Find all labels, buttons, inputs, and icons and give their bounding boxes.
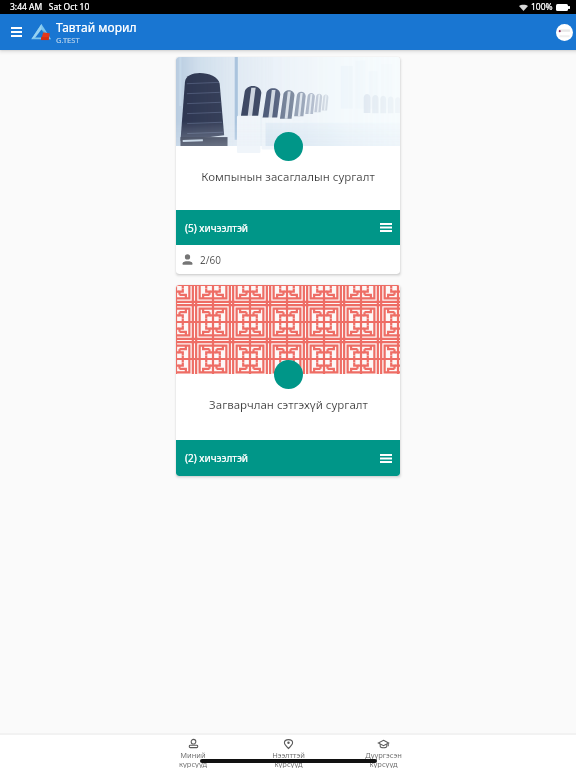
staticText: Нээлттэй курсууд	[272, 750, 305, 768]
staticText: (2) хичээлтэй	[185, 451, 249, 465]
button[interactable]: My courses	[145, 735, 241, 768]
staticText: G.TEST	[56, 35, 80, 45]
staticText: 3:44 AM Sat Oct 10	[10, 1, 90, 13]
staticText: Тавтай морил	[56, 19, 137, 35]
button[interactable]: Загварчлан сэтгэхүй сургалт	[176, 285, 400, 476]
button[interactable]: Open navigation menu	[3, 19, 29, 45]
button[interactable]: Компынын засаглалын сургалт	[176, 57, 400, 274]
button[interactable]: Open courses	[241, 735, 336, 768]
staticText: Компынын засаглалын сургалт	[201, 169, 375, 185]
staticText: Миний курсууд	[179, 750, 207, 768]
staticText: Загварчлан сэтгэхүй сургалт	[209, 397, 368, 413]
button[interactable]: Profile	[556, 24, 573, 41]
staticText: 100%	[531, 1, 553, 13]
staticText: 2/60	[200, 253, 221, 267]
button[interactable]: (5) хичээлтэй	[176, 210, 400, 245]
staticText: (5) хичээлтэй	[185, 221, 249, 235]
button[interactable]: (2) хичээлтэй	[176, 440, 400, 476]
button[interactable]: Completed courses	[336, 735, 431, 768]
staticText: Дүүргэсэн курсууд	[365, 750, 402, 768]
